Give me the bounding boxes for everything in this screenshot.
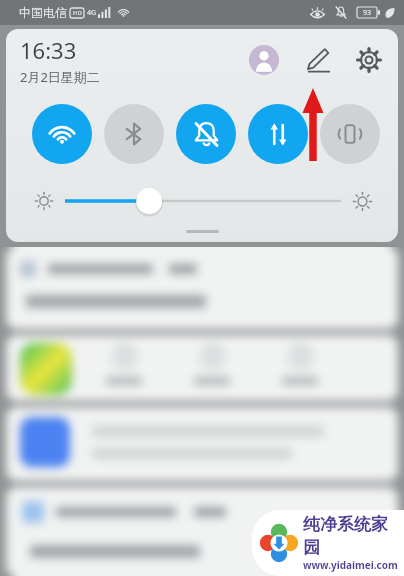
staticText: 2月2日星期二 bbox=[20, 68, 100, 86]
button[interactable]: Silent mode bbox=[176, 104, 236, 164]
button[interactable]: Settings bbox=[353, 44, 385, 76]
staticText: 纯净系统家园 bbox=[303, 514, 398, 558]
staticText: HD bbox=[73, 9, 82, 17]
button[interactable]: Wi-Fi bbox=[32, 104, 92, 164]
button[interactable]: Vibrate bbox=[320, 104, 380, 164]
button[interactable]: Edit quick settings bbox=[301, 44, 333, 76]
button[interactable]: Brightness bbox=[65, 184, 341, 218]
staticText: 16:33 bbox=[20, 35, 77, 65]
button[interactable]: User account bbox=[249, 45, 279, 75]
staticText: 93 bbox=[363, 8, 372, 18]
staticText: www.yidaimei.com bbox=[303, 558, 398, 572]
button[interactable]: Mobile data bbox=[248, 104, 308, 164]
button[interactable]: Bluetooth bbox=[104, 104, 164, 164]
staticText: 4G bbox=[87, 8, 97, 18]
staticText: 中国电信 bbox=[19, 5, 67, 20]
